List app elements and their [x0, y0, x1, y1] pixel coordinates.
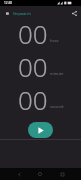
button[interactable]: Share: [69, 8, 79, 18]
button[interactable]: Navigate up: [3, 9, 11, 17]
button[interactable]: Recents: [56, 168, 68, 180]
button[interactable]: Start: [28, 122, 53, 138]
staticText: second: [50, 104, 64, 109]
staticText: minute: [50, 71, 64, 76]
staticText: 12:30: [4, 1, 13, 5]
button[interactable]: Back: [13, 168, 25, 180]
staticText: 00: [18, 82, 48, 117]
staticText: Stopwatch: [13, 11, 31, 16]
staticText: hour: [50, 38, 60, 43]
staticText: 00: [18, 16, 48, 51]
button[interactable]: Home: [34, 168, 46, 180]
staticText: 00: [18, 49, 48, 84]
